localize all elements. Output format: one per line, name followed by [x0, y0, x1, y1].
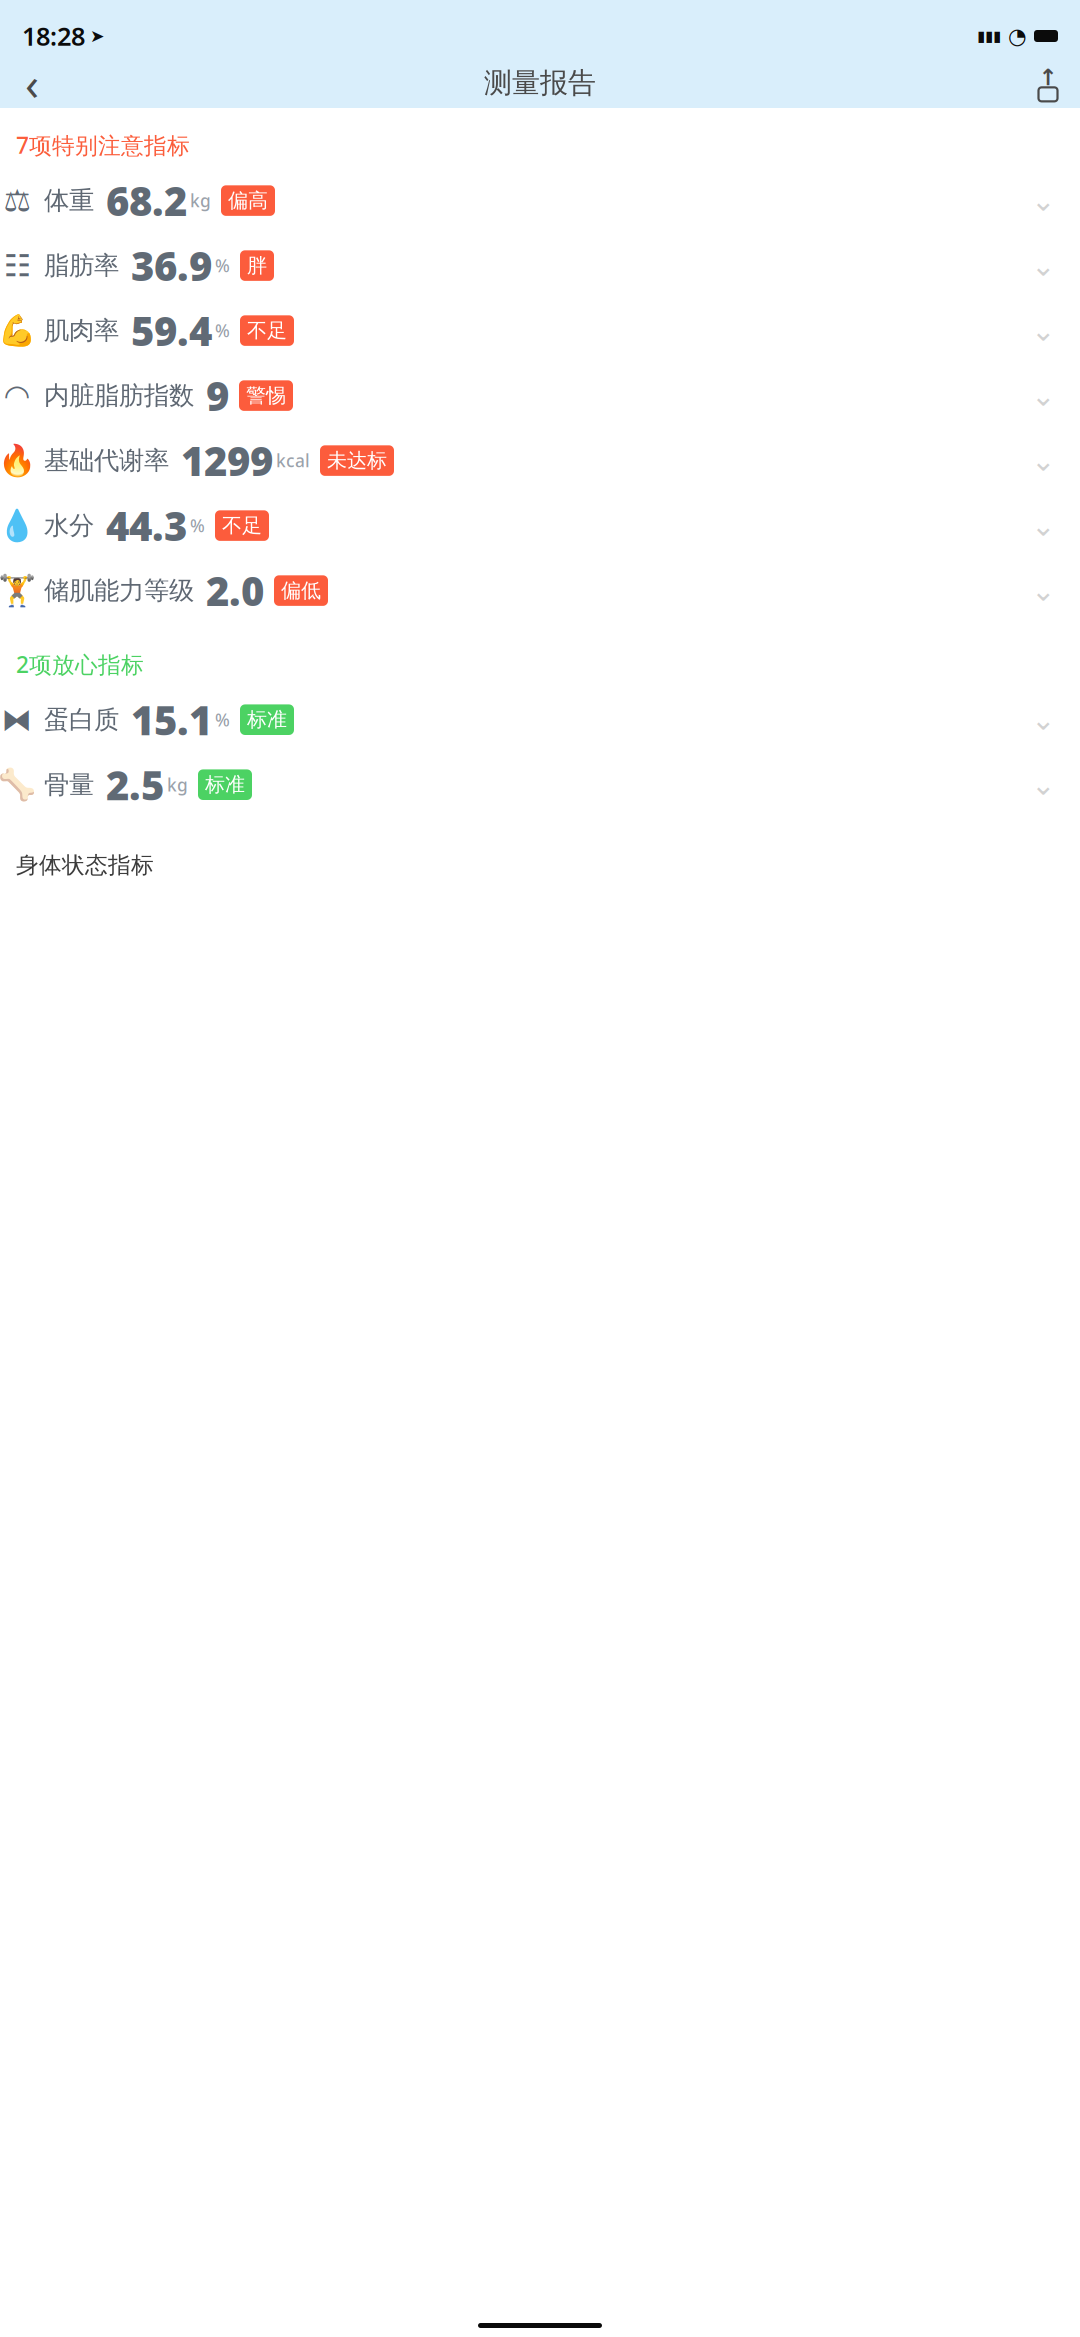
button[interactable]: 🔥	[0, 428, 1080, 493]
staticText: 未达标	[327, 448, 387, 473]
staticText: ➤	[90, 26, 105, 46]
staticText: 🏋	[0, 573, 36, 608]
staticText: ◠	[3, 378, 30, 413]
staticText: 蛋白质	[44, 704, 119, 735]
staticText: ⌄	[1031, 574, 1056, 607]
staticText: kcal	[276, 449, 310, 472]
staticText: ⌄	[1031, 314, 1056, 347]
staticText: 偏低	[281, 578, 321, 603]
staticText: 15.1	[131, 693, 212, 746]
staticText: 水分	[44, 510, 94, 541]
staticText: 体重	[44, 185, 94, 216]
button[interactable]: 🦴	[0, 752, 1080, 817]
staticText: kg	[167, 773, 188, 796]
staticText: ⚖	[3, 183, 30, 218]
staticText: 1299	[181, 434, 273, 487]
staticText: ⌄	[1031, 768, 1056, 801]
staticText: 标准	[205, 772, 245, 797]
staticText: 肌肉率	[44, 315, 119, 346]
staticText: 🦴	[0, 767, 36, 802]
staticText: %	[190, 514, 205, 537]
staticText: 59.4	[131, 304, 212, 357]
button[interactable]: ⚖	[0, 168, 1080, 233]
staticText: 18:28	[22, 19, 85, 53]
staticText: ⧓	[1, 702, 32, 737]
button[interactable]: 💧	[0, 493, 1080, 558]
staticText: 9	[206, 369, 229, 422]
staticText: 胖	[247, 253, 267, 278]
staticText: ⌄	[1031, 379, 1056, 412]
button[interactable]: ⧓	[0, 687, 1080, 752]
staticText: ‹	[25, 53, 39, 113]
staticText: ↑	[1038, 65, 1057, 90]
staticText: ☷	[3, 248, 30, 283]
staticText: 基础代谢率	[44, 445, 169, 476]
staticText: 储肌能力等级	[44, 575, 194, 606]
staticText: 2.0	[206, 564, 264, 617]
button[interactable]: Back	[10, 61, 54, 105]
staticText: 7项特别注意指标	[16, 130, 190, 160]
staticText: ⌄	[1031, 184, 1056, 217]
staticText: kg	[190, 189, 211, 212]
staticText: 不足	[222, 513, 262, 538]
staticText: 2.5	[106, 758, 164, 811]
staticText: 测量报告	[484, 66, 596, 100]
staticText: 2项放心指标	[16, 649, 144, 679]
staticText: ◔	[1008, 24, 1027, 48]
button[interactable]: ◠	[0, 363, 1080, 428]
staticText: ⌄	[1031, 249, 1056, 282]
staticText: 68.2	[106, 174, 187, 227]
staticText: 脂肪率	[44, 250, 119, 281]
staticText: 标准	[247, 707, 287, 732]
staticText: 💪	[0, 313, 36, 348]
staticText: 内脏脂肪指数	[44, 380, 194, 411]
staticText: 不足	[247, 318, 287, 343]
staticText: 44.3	[106, 499, 187, 552]
staticText: 身体状态指标	[16, 851, 154, 879]
staticText: ⌄	[1031, 444, 1056, 477]
button[interactable]: ☷	[0, 233, 1080, 298]
staticText: %	[215, 254, 230, 277]
staticText: ⌄	[1031, 703, 1056, 736]
staticText: 36.9	[131, 239, 212, 292]
staticText: 偏高	[228, 188, 268, 213]
staticText: 警惕	[246, 383, 286, 408]
button[interactable]: Share	[1026, 61, 1070, 105]
button[interactable]: 💪	[0, 298, 1080, 363]
button[interactable]: 🏋	[0, 558, 1080, 623]
staticText: 骨量	[44, 769, 94, 800]
staticText: 🔥	[0, 443, 36, 478]
staticText: 💧	[0, 508, 36, 543]
staticText: ▮▮▮	[977, 28, 1001, 44]
staticText: %	[215, 319, 230, 342]
staticText: ⌄	[1031, 509, 1056, 542]
staticText: %	[215, 708, 230, 731]
